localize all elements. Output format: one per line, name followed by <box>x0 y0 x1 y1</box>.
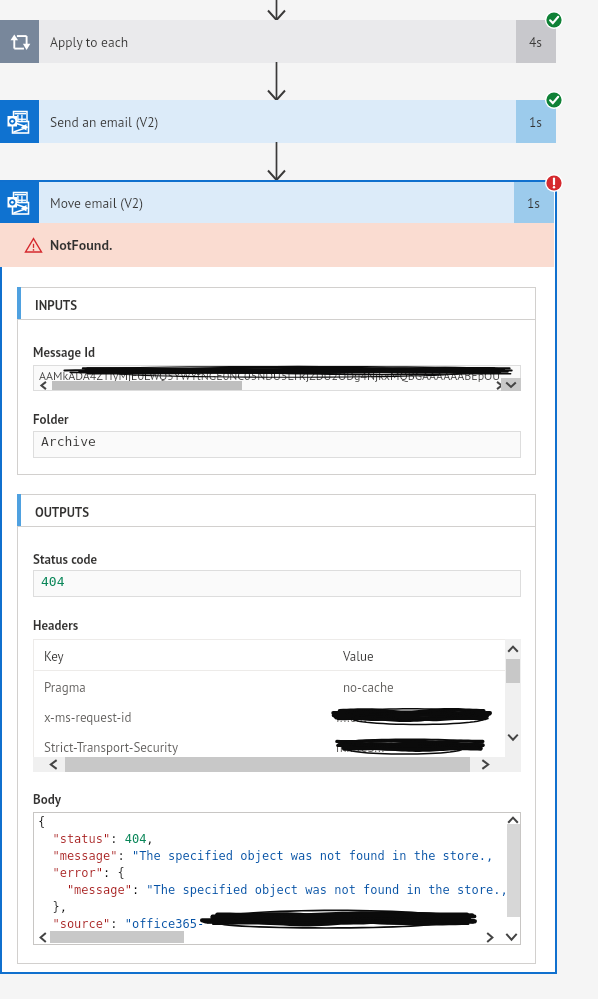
staticText: f...e... <box>336 709 367 726</box>
button[interactable]: Strict-Transport-Security <box>33 731 505 761</box>
other: Failed <box>545 174 563 192</box>
staticText: Body <box>33 791 61 808</box>
button[interactable] <box>33 570 521 597</box>
staticText: 404 <box>41 574 65 589</box>
staticText: x-ms-request-id <box>44 709 132 726</box>
staticText: Folder <box>33 411 69 428</box>
staticText: Status code <box>33 551 98 568</box>
staticText: Archive <box>41 434 96 449</box>
staticText: "error": { <box>38 866 522 880</box>
staticText: }, <box>38 900 522 914</box>
staticText: no-cache <box>343 679 394 696</box>
staticText: m...teS... <box>336 739 385 756</box>
staticText: Apply to each <box>50 33 129 50</box>
staticText: Value <box>343 648 374 665</box>
staticText: "source": "office365- <box>38 917 522 931</box>
staticText: NotFound. <box>50 236 113 254</box>
staticText: Move email (V2) <box>50 194 143 211</box>
staticText: 4s <box>529 33 543 50</box>
staticText: AAMkADA4ZTIyMjE0LWQ5YWYtNGE0NC05NDU5LTRj… <box>39 368 521 384</box>
staticText: Strict-Transport-Security <box>44 739 179 756</box>
other: Succeeded <box>545 91 563 109</box>
button[interactable]: x-ms-request-id <box>33 701 505 731</box>
button[interactable]: INPUTS <box>17 287 536 320</box>
button[interactable]: NotFound. <box>0 223 554 267</box>
staticText: Send an email (V2) <box>50 113 159 130</box>
button[interactable]: Move email (V2) <box>0 182 554 223</box>
button[interactable] <box>33 431 521 458</box>
button[interactable] <box>33 365 521 391</box>
other: Succeeded <box>545 11 563 29</box>
button[interactable]: Send an email (V2) <box>0 100 556 143</box>
staticText: "message": "The specified object was not… <box>38 849 522 863</box>
staticText: Headers <box>33 617 79 634</box>
staticText: 1s <box>527 194 541 211</box>
button[interactable]: OUTPUTS <box>17 494 536 527</box>
staticText: "status": 404, <box>38 832 522 846</box>
button[interactable]: Pragma <box>33 671 505 701</box>
staticText: OUTPUTS <box>35 504 90 521</box>
staticText: 1s <box>529 113 543 130</box>
button[interactable]: Apply to each <box>0 20 556 63</box>
staticText: { <box>38 815 522 829</box>
staticText: Key <box>44 648 64 665</box>
staticText: "message": "The specified object was not… <box>38 883 522 897</box>
staticText: INPUTS <box>35 297 78 314</box>
staticText: Message Id <box>33 344 95 361</box>
staticText: Pragma <box>44 679 86 696</box>
